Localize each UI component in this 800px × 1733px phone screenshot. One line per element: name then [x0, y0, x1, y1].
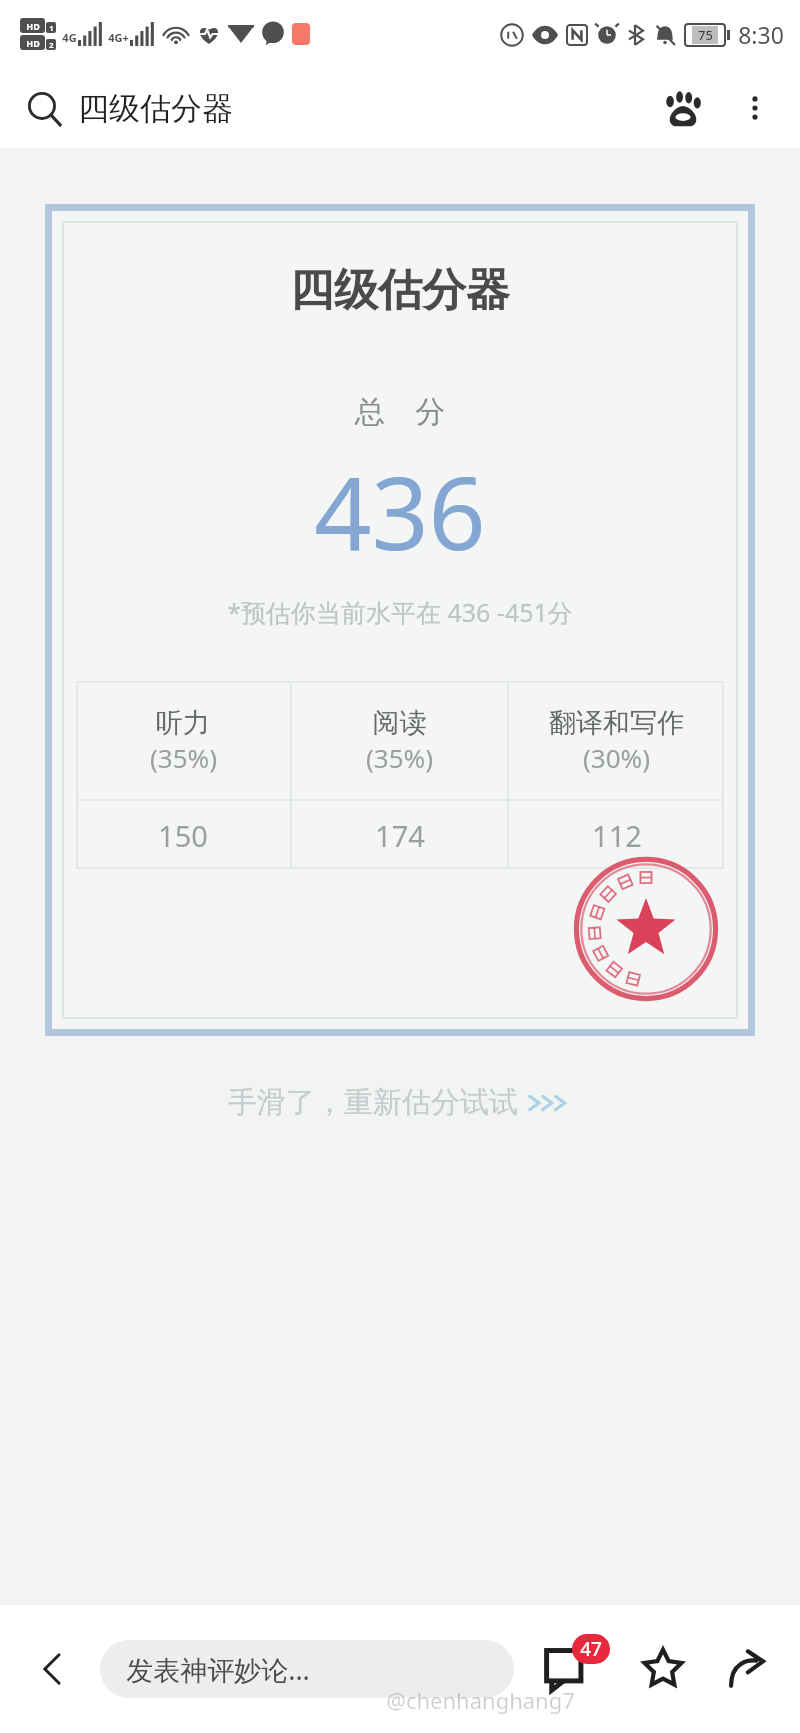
staticText: 2	[49, 40, 54, 50]
button[interactable]: Baidu	[656, 81, 710, 135]
staticText: 4G+	[108, 30, 129, 45]
staticText: 47	[580, 1636, 602, 1662]
staticText: 四级估分器	[290, 263, 510, 318]
button[interactable]: 发表神评妙论...	[100, 1640, 514, 1698]
staticText: 1	[49, 23, 54, 33]
staticText: 150	[158, 816, 208, 855]
staticText: 四级估分器	[78, 89, 233, 128]
button[interactable]: More options	[728, 81, 782, 135]
button[interactable]: 翻译和写作	[509, 681, 724, 799]
button[interactable]: 手滑了，重新估分试试	[0, 1084, 800, 1121]
button[interactable]: Comments, 47	[540, 1636, 606, 1702]
button[interactable]: 174	[292, 801, 507, 869]
staticText: 174	[375, 816, 425, 855]
staticText: 翻译和写作	[509, 706, 724, 740]
staticText: 75	[698, 26, 713, 44]
button[interactable]: 阅读	[292, 681, 507, 799]
button[interactable]: Search	[26, 89, 233, 128]
button[interactable]: 150	[76, 801, 290, 869]
staticText: @chenhanghang7	[386, 1685, 575, 1715]
button[interactable]: 四级估分器	[62, 221, 738, 1019]
staticText: *预估你当前水平在 436 -451分	[227, 595, 573, 629]
staticText: 发表神评妙论...	[126, 1651, 310, 1688]
button[interactable]: Favorite	[632, 1638, 694, 1700]
staticText: HD	[26, 37, 40, 49]
staticText: HD	[26, 20, 40, 32]
staticText: 4G	[62, 30, 77, 45]
staticText: 112	[592, 816, 642, 855]
staticText: 听力	[76, 706, 290, 740]
staticText: (35%)	[150, 740, 217, 775]
button[interactable]: Share	[716, 1638, 778, 1700]
staticText: (35%)	[366, 740, 433, 775]
staticText: 8:30	[738, 19, 784, 50]
button[interactable]: 听力	[76, 681, 290, 799]
button[interactable]: 112	[509, 801, 724, 869]
staticText: 436	[314, 443, 486, 579]
staticText: (30%)	[583, 740, 650, 775]
staticText: 阅读	[292, 706, 507, 740]
staticText: 总 分	[354, 390, 446, 431]
other: Search	[26, 90, 64, 128]
button[interactable]: Back	[22, 1638, 84, 1700]
staticText: 手滑了，重新估分试试	[228, 1084, 518, 1121]
